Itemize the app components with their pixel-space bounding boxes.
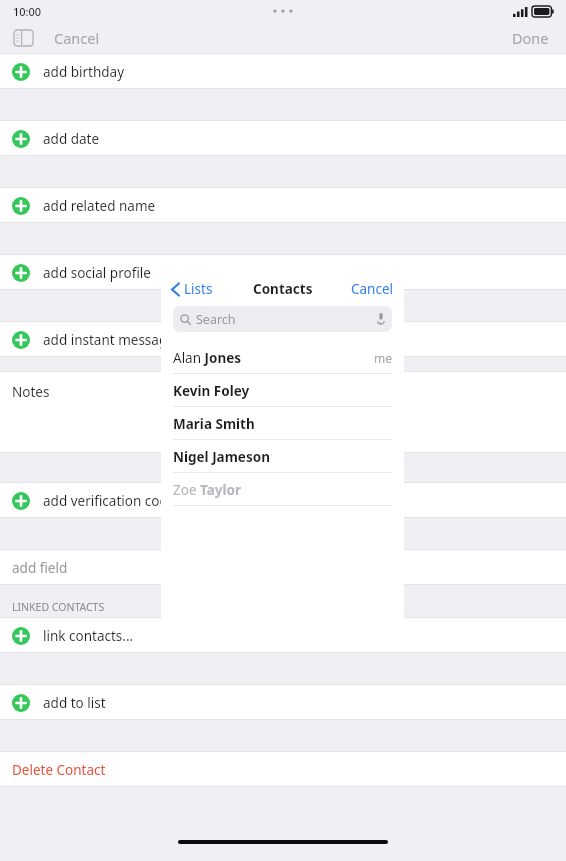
staticText: Contacts [253, 280, 313, 298]
button[interactable]: Maria Smith [161, 407, 404, 440]
staticText: Nigel Jameson [173, 448, 270, 466]
staticText: add date [43, 130, 100, 148]
staticText: Done [512, 28, 549, 48]
button[interactable]: add to list [0, 685, 566, 720]
staticText: Cancel [351, 280, 394, 298]
staticText: add verification code [43, 492, 176, 510]
button[interactable]: Zoe Taylor [161, 473, 404, 506]
button[interactable]: Done [508, 24, 553, 52]
staticText: Kevin Foley [173, 382, 250, 400]
staticText: add related name [43, 197, 156, 215]
staticText: Lists [184, 280, 213, 298]
staticText: LINKED CONTACTS [12, 600, 105, 614]
button[interactable]: Alan Jones [161, 341, 404, 374]
staticText: me [374, 350, 392, 366]
staticText: add instant message [43, 331, 175, 349]
staticText: Cancel [54, 28, 100, 48]
button[interactable]: Toggle sidebar [10, 25, 36, 51]
staticText: add to list [43, 694, 106, 712]
button[interactable]: Cancel [349, 276, 396, 302]
button[interactable]: Cancel [50, 24, 104, 52]
staticText: Maria Smith [173, 415, 255, 433]
button[interactable]: Delete Contact [0, 752, 566, 787]
button[interactable]: Nigel Jameson [161, 440, 404, 473]
staticText: Notes [12, 383, 50, 401]
button[interactable]: add field [0, 550, 566, 585]
staticText: add social profile [43, 264, 151, 282]
button[interactable]: Kevin Foley [161, 374, 404, 407]
staticText: link contacts... [43, 627, 134, 645]
staticText: Search [196, 311, 236, 328]
button[interactable]: add date [0, 121, 566, 156]
staticText: add field [12, 559, 68, 577]
button[interactable]: Lists [169, 276, 215, 302]
button[interactable]: add verification code [0, 483, 566, 518]
staticText: Zoe Taylor [173, 481, 242, 499]
staticText: add birthday [43, 63, 125, 81]
button[interactable]: add birthday [0, 54, 566, 89]
button[interactable]: Notes [0, 372, 566, 453]
button[interactable]: add social profile [0, 255, 566, 290]
button[interactable]: add related name [0, 188, 566, 223]
button[interactable]: Search [173, 306, 392, 332]
staticText: 10:00 [13, 4, 42, 19]
button[interactable]: link contacts... [0, 618, 566, 653]
button[interactable]: add instant message [0, 322, 566, 357]
staticText: Alan Jones [173, 349, 242, 367]
staticText: Delete Contact [12, 761, 106, 779]
